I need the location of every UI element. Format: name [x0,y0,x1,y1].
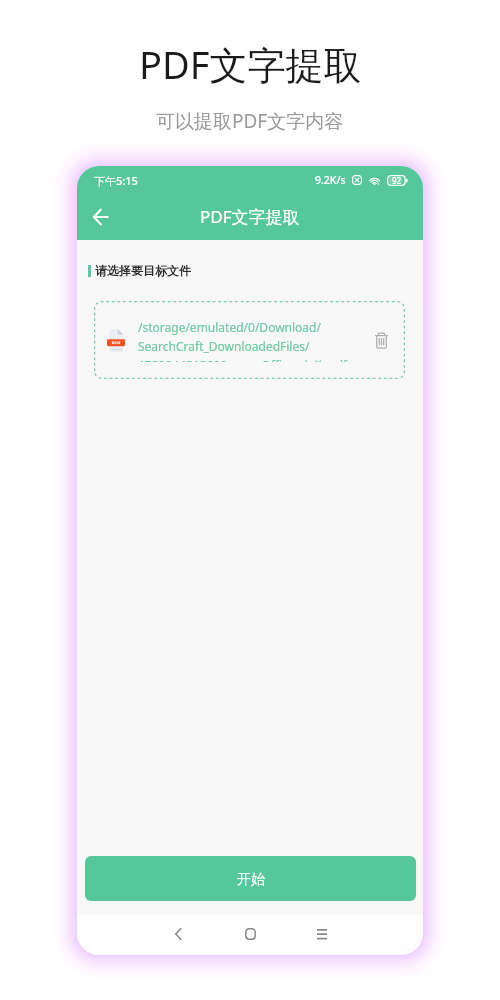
button[interactable]: Home [232,916,268,952]
staticText: /storage/emulated/0/Download/SearchCraft… [138,319,359,362]
staticText: 可以提取PDF文字内容 [156,108,344,134]
staticText: PDF文字提取 [139,38,362,90]
button[interactable]: 开始 [85,856,416,901]
button[interactable]: Recents [304,916,340,952]
button[interactable]: Delete [368,327,394,353]
staticText: 请选择要目标文件 [95,263,191,278]
staticText: 开始 [237,871,265,889]
staticText: 下午5:15 [94,173,138,188]
button[interactable]: /storage/emulated/0/Download/SearchCraft… [94,301,405,379]
staticText: PDF文字提取 [200,205,300,228]
button[interactable]: Back [160,916,196,952]
staticText: 92 [392,175,402,186]
button[interactable]: Back [82,199,118,235]
staticText: 9.2K/s [315,173,346,187]
